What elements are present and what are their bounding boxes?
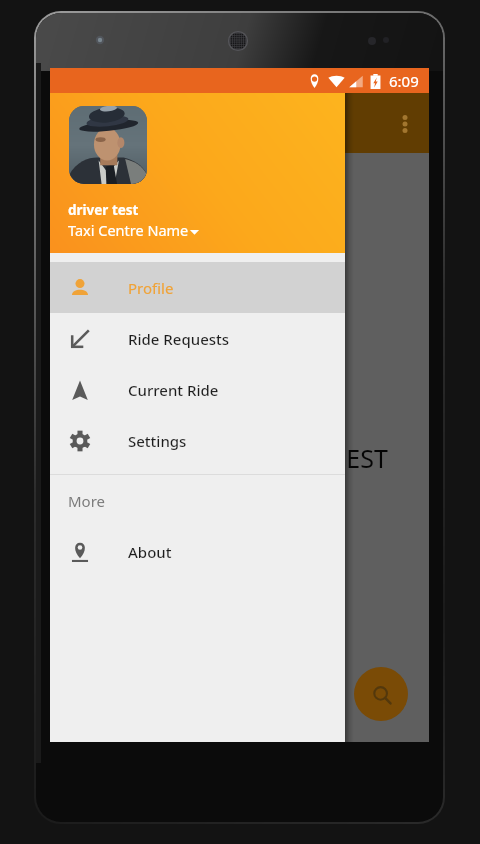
button[interactable]: More options (383, 102, 427, 146)
staticText: More (68, 491, 106, 511)
staticText: About (128, 542, 172, 562)
button[interactable]: Current Ride (50, 364, 345, 415)
staticText: Settings (128, 431, 187, 451)
staticText: 6:09 (389, 71, 419, 91)
button[interactable]: Search (354, 667, 408, 721)
staticText: Profile (128, 278, 174, 298)
button[interactable]: Ride Requests (50, 313, 345, 364)
button[interactable]: Profile (50, 262, 345, 313)
staticText: Taxi Centre Name (68, 220, 189, 240)
staticText: NO ACTIVE REQUEST (145, 441, 388, 475)
staticText: driver test (68, 201, 139, 219)
button[interactable]: About (50, 526, 345, 577)
button[interactable]: Settings (50, 415, 345, 466)
staticText: Ride Requests (128, 329, 230, 349)
staticText: Current Ride (128, 380, 219, 400)
